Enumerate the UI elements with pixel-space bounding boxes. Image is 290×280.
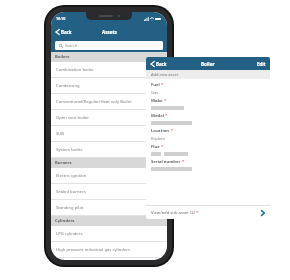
button[interactable]: SUB [51, 126, 167, 142]
button[interactable]: Search [55, 41, 163, 50]
button[interactable]: Electric ignition [51, 168, 167, 184]
button[interactable]: Sealed burners [51, 184, 167, 200]
button[interactable]: Conventional/Regular/Heat only Boiler [51, 94, 167, 110]
staticText: System boiler [56, 147, 83, 153]
button[interactable]: Standing pilot [51, 200, 167, 216]
staticText: SUB [56, 131, 65, 137]
staticText: Combination boiler [56, 67, 94, 73]
staticText: Assets [102, 29, 117, 35]
staticText: High pressure industrial gas cylinders [56, 247, 130, 253]
staticText: * [165, 113, 168, 119]
staticText: Search [65, 43, 78, 48]
staticText: Gas [151, 90, 159, 95]
button[interactable]: Back [55, 29, 72, 35]
staticText: Kitchen [151, 136, 166, 141]
staticText: Standing pilot [56, 205, 84, 211]
staticText: Back [156, 61, 167, 67]
button[interactable]: Add new asset [151, 70, 270, 79]
button[interactable]: Edit [257, 61, 266, 67]
staticText: Serial number [151, 159, 181, 165]
staticText: Open vent boiler [56, 115, 89, 121]
staticText: * [196, 210, 199, 216]
staticText: * [161, 82, 164, 88]
staticText: * [182, 159, 185, 165]
staticText: LPG cylinders [56, 231, 83, 237]
staticText: Back [61, 29, 72, 35]
staticText: Condensing [56, 83, 80, 89]
staticText: View/add sub asset (2) [151, 210, 195, 216]
staticText: 10:10 [56, 16, 66, 21]
staticText: Make [151, 98, 163, 104]
button[interactable]: View/add sub asset (2) [151, 206, 265, 219]
button[interactable]: Combination boiler [51, 62, 167, 78]
other: Open sub assets [261, 210, 265, 216]
staticText: Electric ignition [56, 173, 87, 179]
staticText: Burners [55, 160, 72, 166]
staticText: Model [151, 113, 164, 119]
staticText: Fuel [151, 82, 160, 88]
button[interactable]: Condensing [51, 78, 167, 94]
staticText: * [171, 128, 174, 134]
button[interactable]: LPG cylinders [51, 226, 167, 242]
staticText: Conventional/Regular/Heat only Boiler [56, 99, 132, 105]
staticText: * [164, 98, 167, 104]
button[interactable]: Open vent boiler [51, 110, 167, 126]
button[interactable]: Back [150, 61, 167, 67]
staticText: Add new asset [151, 72, 179, 77]
button[interactable]: System boiler [51, 142, 167, 158]
staticText: Boiler [201, 61, 215, 67]
staticText: Edit [257, 61, 266, 67]
staticText: Flue [151, 144, 160, 150]
staticText: Cylinders [55, 218, 75, 224]
staticText: Boilers [55, 54, 70, 60]
staticText: Sealed burners [56, 189, 86, 195]
staticText: Location [151, 128, 170, 134]
button[interactable]: High pressure industrial gas cylinders [51, 242, 167, 258]
staticText: * [161, 144, 164, 150]
